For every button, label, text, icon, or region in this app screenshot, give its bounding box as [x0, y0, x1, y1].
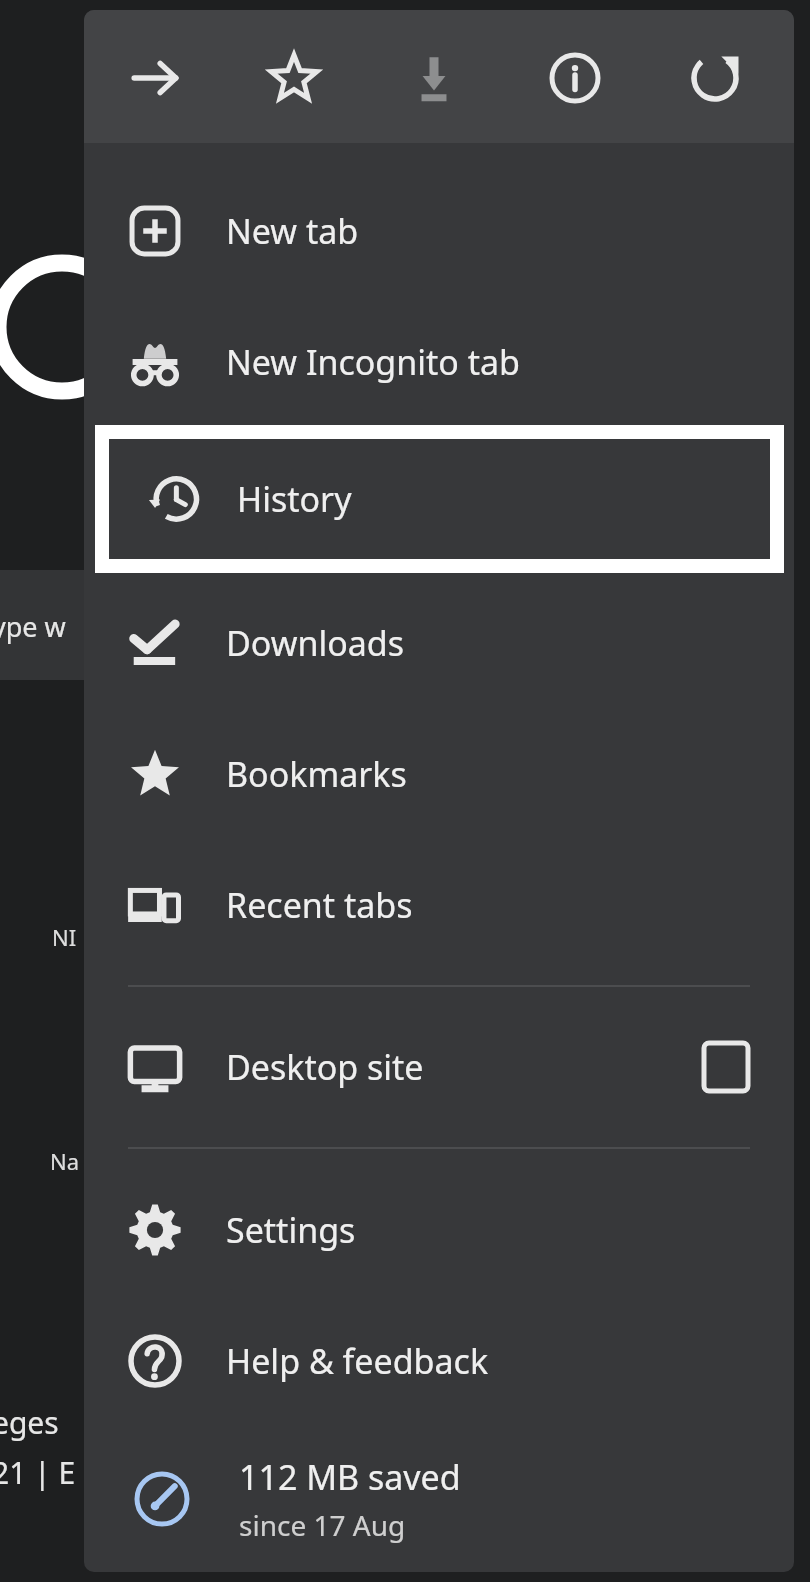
button[interactable]: New Incognito tab — [84, 296, 794, 427]
button[interactable]: New tab — [84, 165, 794, 296]
button[interactable]: Recent tabs — [84, 839, 794, 970]
button[interactable]: Help & feedback — [84, 1295, 794, 1426]
button[interactable]: Page info — [531, 34, 619, 122]
staticText: since 17 Aug — [239, 1506, 406, 1544]
staticText: New tab — [226, 208, 359, 254]
staticText: Downloads — [226, 620, 405, 666]
staticText: Recent tabs — [226, 882, 413, 928]
button[interactable]: Forward — [111, 34, 199, 122]
staticText: ype w — [0, 608, 66, 645]
staticText: New Incognito tab — [226, 339, 520, 385]
button[interactable]: Bookmarks — [84, 708, 794, 839]
staticText: Desktop site — [226, 1044, 424, 1090]
staticText: 21 | E — [0, 1452, 76, 1493]
button[interactable]: Downloads — [84, 577, 794, 708]
staticText: 112 MB saved — [239, 1454, 461, 1500]
button[interactable]: Settings — [84, 1164, 794, 1295]
button[interactable]: Download page — [390, 34, 478, 122]
button[interactable]: Desktop site — [84, 1002, 794, 1132]
staticText: NI — [52, 922, 77, 952]
staticText: Na — [50, 1146, 80, 1176]
button[interactable]: History — [95, 425, 784, 573]
button[interactable]: Bookmark — [250, 34, 338, 122]
staticText: Help & feedback — [226, 1338, 489, 1384]
staticText: Bookmarks — [226, 751, 407, 797]
staticText: Settings — [226, 1207, 356, 1253]
staticText: eges — [0, 1402, 59, 1443]
button[interactable]: Reload — [671, 34, 759, 122]
staticText: History — [237, 476, 352, 522]
button[interactable]: 112 MB saved — [84, 1426, 794, 1572]
